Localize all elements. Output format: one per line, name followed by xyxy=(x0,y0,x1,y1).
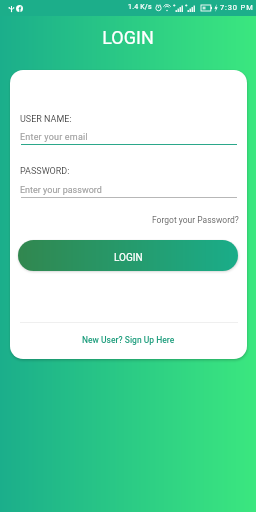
button[interactable]: New User? Sign Up Here xyxy=(76,328,180,350)
staticText: USER NAME: xyxy=(20,114,72,125)
other: Charging xyxy=(214,4,218,12)
staticText: Enter your password xyxy=(20,185,102,196)
staticText: LOGIN xyxy=(114,252,143,264)
button[interactable]: LOGIN xyxy=(18,240,238,271)
other: Mobile signal SIM 2 xyxy=(185,4,194,12)
other: Mobile signal SIM 1 xyxy=(173,4,182,12)
other: Alarm set xyxy=(155,4,162,11)
staticText: PASSWORD: xyxy=(20,166,70,177)
staticText: Enter your email xyxy=(20,132,88,143)
button[interactable]: Forgot your Password? xyxy=(148,211,243,229)
other: Battery xyxy=(201,5,212,11)
button[interactable]: Enter your password xyxy=(21,178,237,199)
other: Wi-Fi xyxy=(163,4,171,12)
staticText: New User? Sign Up Here xyxy=(82,335,175,345)
button[interactable]: Enter your email xyxy=(21,125,237,146)
staticText: Forgot your Password? xyxy=(152,215,239,225)
other: USB connected xyxy=(8,5,15,12)
other: Facebook notification xyxy=(16,5,23,12)
staticText: LOGIN xyxy=(0,27,256,48)
staticText: 7:30 PM xyxy=(220,3,254,12)
staticText: 1.4 K/s xyxy=(128,3,152,11)
